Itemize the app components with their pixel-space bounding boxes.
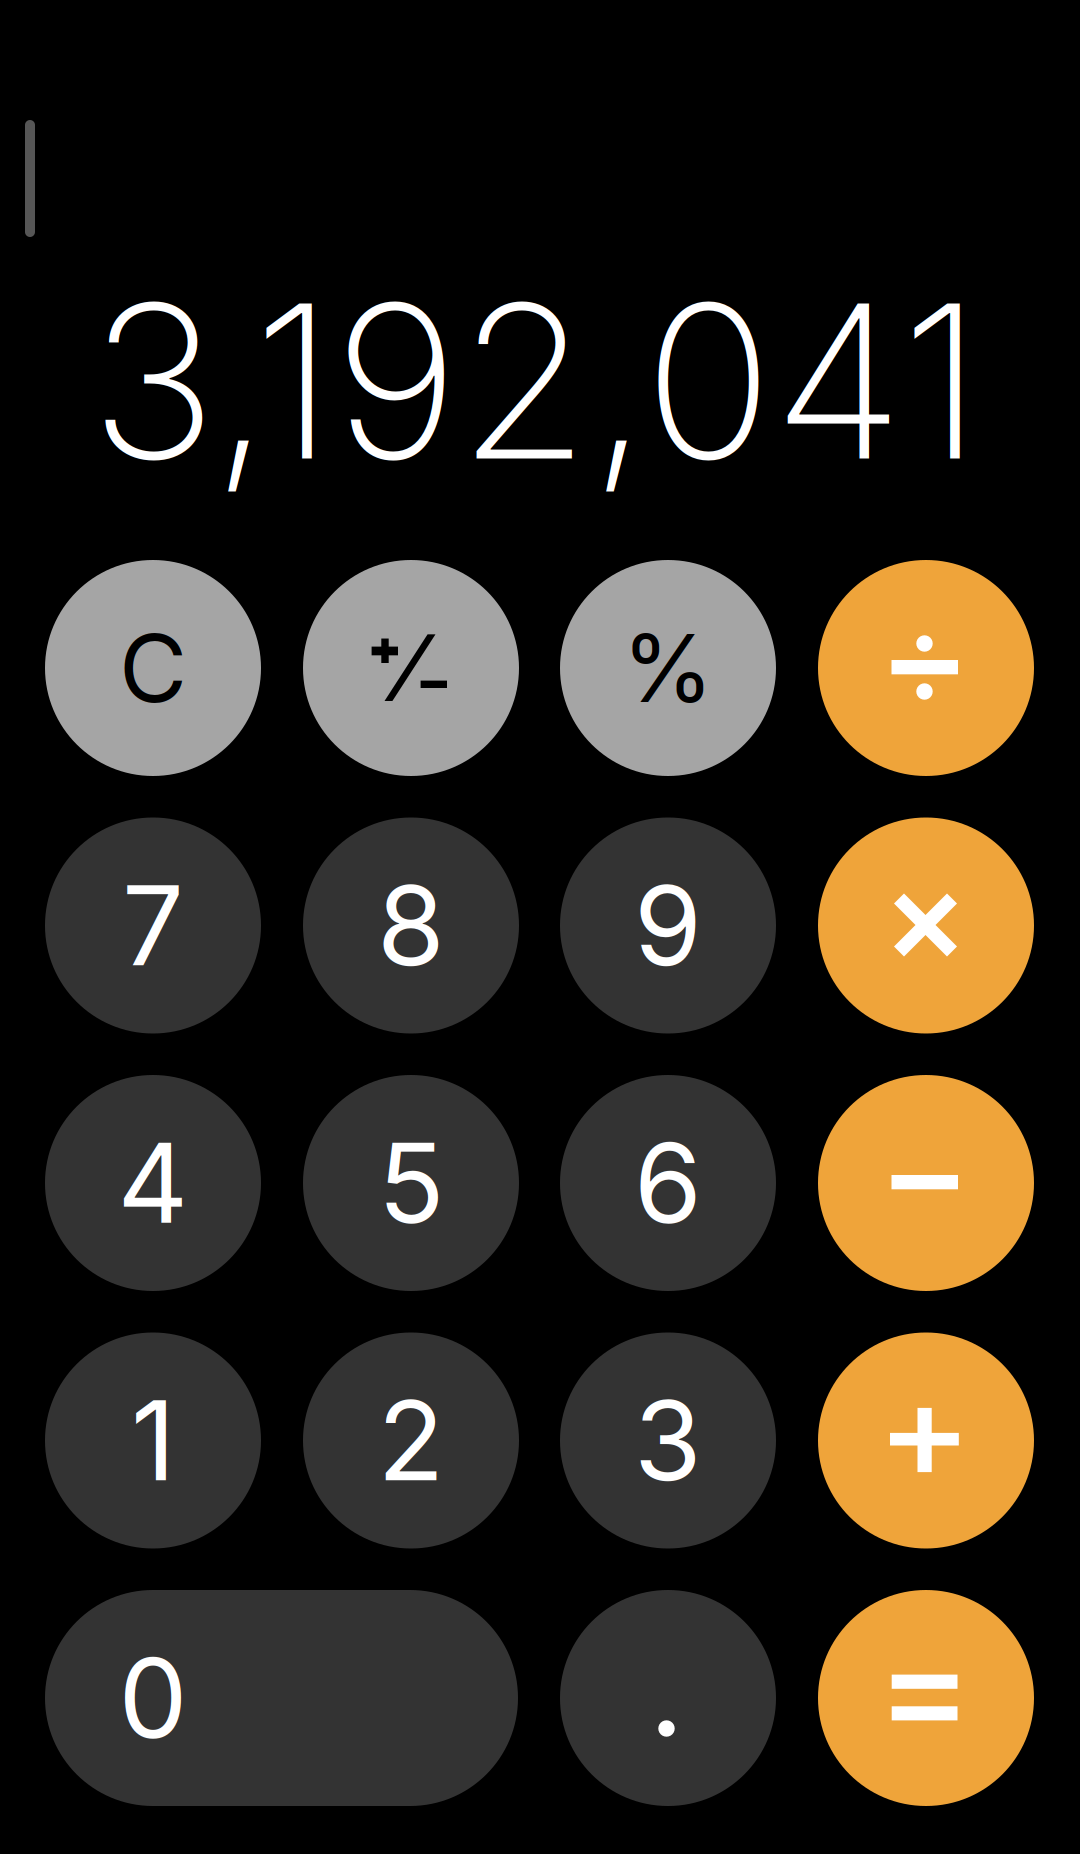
staticText: 7 (122, 859, 184, 992)
staticText: 6 (634, 1117, 702, 1249)
button[interactable]: 8 (303, 817, 519, 1033)
button[interactable]: 0 (45, 1590, 518, 1806)
button[interactable]: 4 (45, 1075, 261, 1291)
staticText: C (119, 611, 187, 724)
staticText: 0 (118, 1632, 187, 1764)
staticText: 3,192,041 (90, 252, 982, 510)
button[interactable]: Decimal point (560, 1590, 776, 1806)
staticText: 9 (634, 859, 702, 992)
staticText: 8 (377, 859, 445, 992)
button[interactable]: Plus (818, 1332, 1034, 1548)
button[interactable]: 1 (45, 1332, 261, 1548)
button[interactable]: C (45, 560, 261, 776)
staticText: 3 (634, 1374, 702, 1507)
staticText: % (622, 611, 714, 724)
button[interactable]: 5 (303, 1075, 519, 1291)
staticText: 5 (378, 1117, 444, 1249)
button[interactable]: % (560, 560, 776, 776)
button[interactable]: Minus (818, 1075, 1034, 1291)
button[interactable]: Plus minus (303, 560, 519, 776)
staticText: 4 (117, 1117, 188, 1249)
button[interactable]: Divide (818, 560, 1034, 776)
button[interactable]: 7 (45, 817, 261, 1033)
button[interactable]: Multiply (818, 817, 1034, 1033)
button[interactable]: 2 (303, 1332, 519, 1548)
button[interactable]: 6 (560, 1075, 776, 1291)
button[interactable]: 3 (560, 1332, 776, 1548)
staticText: 1 (131, 1374, 175, 1507)
button[interactable]: 9 (560, 817, 776, 1033)
button[interactable]: Equals (818, 1590, 1034, 1806)
staticText: 2 (377, 1374, 444, 1507)
